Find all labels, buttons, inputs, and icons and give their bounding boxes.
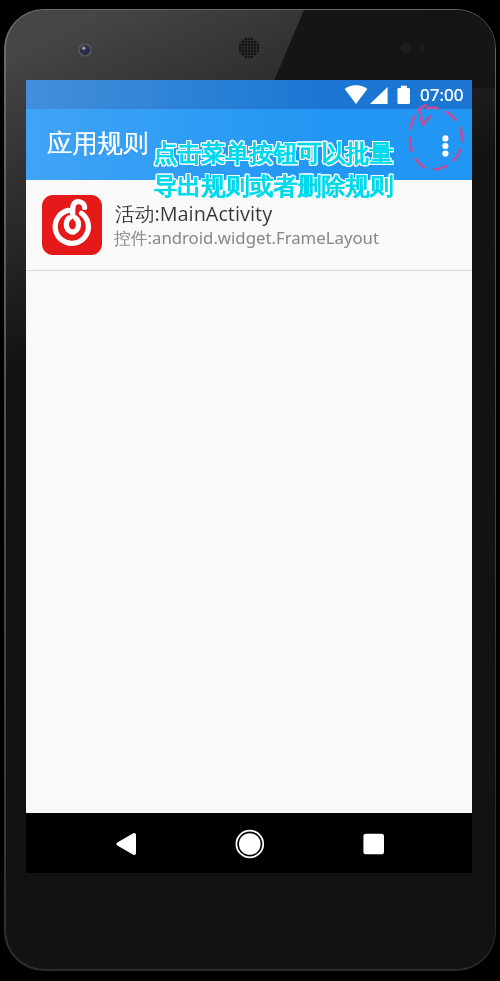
staticText: 导出规则或者删除规则 — [152, 171, 392, 201]
staticText: 点击菜单按钮可以批量 — [153, 140, 393, 170]
staticText: 点击菜单按钮可以批量 — [154, 138, 394, 168]
staticText: 点击菜单按钮可以批量 — [152, 138, 392, 168]
staticText: 应用规则 — [47, 128, 149, 160]
button[interactable]: More options — [424, 121, 472, 169]
staticText: 点击菜单按钮可以批量 — [153, 139, 393, 169]
staticText: 点击菜单按钮可以批量 — [154, 139, 394, 169]
staticText: 导出规则或者删除规则 — [154, 173, 394, 203]
staticText: 07:00 — [420, 83, 464, 106]
staticText: 控件:android.widget.FrameLayout — [114, 226, 379, 249]
staticText: 导出规则或者删除规则 — [153, 171, 393, 201]
button[interactable]: 活动:MainActivity — [26, 180, 472, 270]
staticText: 导出规则或者删除规则 — [153, 172, 393, 202]
staticText: 导出规则或者删除规则 — [152, 173, 392, 203]
staticText: 点击菜单按钮可以批量 — [154, 140, 394, 170]
staticText: 点击菜单按钮可以批量 — [153, 138, 393, 168]
staticText: 点击菜单按钮可以批量 — [152, 140, 392, 170]
staticText: 点击菜单按钮可以批量 — [152, 139, 392, 169]
staticText: 导出规则或者删除规则 — [153, 173, 393, 203]
staticText: 活动:MainActivity — [115, 200, 273, 227]
staticText: 导出规则或者删除规则 — [152, 172, 392, 202]
staticText: 导出规则或者删除规则 — [154, 171, 394, 201]
staticText: 导出规则或者删除规则 — [154, 172, 394, 202]
